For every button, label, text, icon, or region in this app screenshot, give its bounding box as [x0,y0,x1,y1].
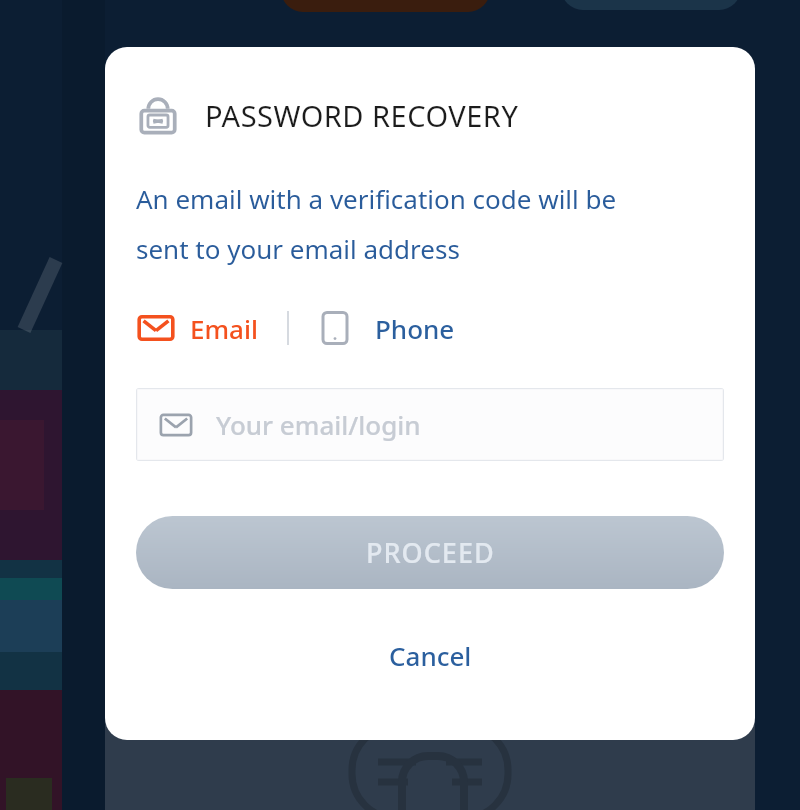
staticText: sent to your email address [136,231,460,266]
button[interactable]: Phone [315,304,455,352]
staticText: An email with a verification code will b… [136,181,617,216]
button[interactable]: Your email/login [136,388,724,461]
staticText: Your email/login [216,407,421,442]
button[interactable]: PROCEED [136,516,724,589]
staticText: Cancel [389,638,472,673]
staticText: PASSWORD RECOVERY [205,96,519,135]
staticText: Email [190,311,259,346]
button[interactable]: Email [136,304,259,352]
staticText: Phone [375,311,455,346]
staticText: PROCEED [366,534,495,571]
button[interactable]: Cancel [365,630,496,681]
